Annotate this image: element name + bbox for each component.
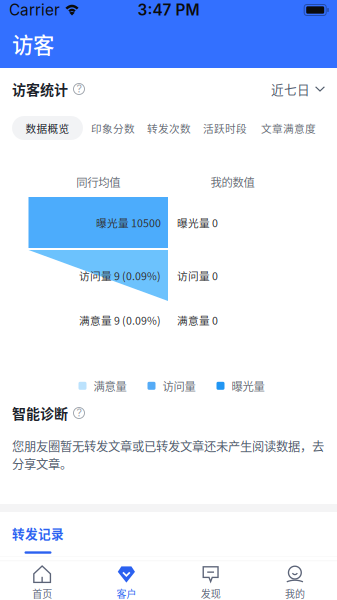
button[interactable]: 我的 [253, 561, 337, 600]
staticText: 曝光量 [231, 378, 264, 394]
button[interactable]: 活跃时段 [203, 116, 247, 140]
button[interactable]: 首页 [0, 561, 84, 600]
staticText: 同行均值 [76, 174, 120, 190]
button[interactable]: 发现 [168, 561, 253, 600]
button[interactable]: 文章满意度 [261, 116, 316, 140]
staticText: 印象分数 [91, 120, 135, 136]
staticText: 您朋友圈暂无转发文章或已转发文章还未产生阅读数据，去分享文章。 [12, 437, 324, 472]
staticText: 转发记录 [12, 524, 64, 542]
staticText: 智能诊断 [12, 403, 68, 423]
staticText: 访客统计 [12, 79, 68, 99]
staticText: 曝光量 0 [177, 215, 218, 230]
staticText: ? [76, 82, 81, 95]
staticText: 发现 [201, 586, 221, 600]
staticText: 文章满意度 [261, 120, 316, 136]
staticText: 访客 [12, 29, 54, 59]
staticText: 满意量 [93, 378, 126, 394]
staticText: 活跃时段 [203, 120, 247, 136]
staticText: 转发次数 [147, 120, 191, 136]
staticText: 访问量 0 [177, 268, 218, 283]
button[interactable]: 转发记录 [12, 512, 64, 556]
staticText: ? [76, 406, 81, 419]
staticText: 数据概览 [25, 120, 69, 136]
button[interactable]: 客户 [84, 561, 168, 600]
staticText: 访问量 9 (0.09%) [79, 268, 161, 283]
staticText: 访问量 [162, 378, 195, 394]
button[interactable]: 转发次数 [147, 116, 191, 140]
staticText: 3:47 PM [137, 1, 199, 19]
staticText: 近七日 [271, 80, 310, 98]
button[interactable]: 近七日 [271, 77, 325, 101]
staticText: 曝光量 10500 [96, 215, 161, 230]
staticText: 我的数值 [210, 174, 254, 190]
staticText: Carrier [9, 1, 60, 19]
staticText: 首页 [32, 586, 52, 600]
staticText: 满意量 0 [177, 312, 218, 328]
button[interactable]: 印象分数 [91, 116, 135, 140]
button[interactable]: 数据概览 [12, 116, 83, 140]
staticText: 我的 [285, 586, 305, 600]
staticText: 满意量 9 (0.09%) [79, 312, 161, 328]
staticText: 客户 [116, 586, 136, 600]
